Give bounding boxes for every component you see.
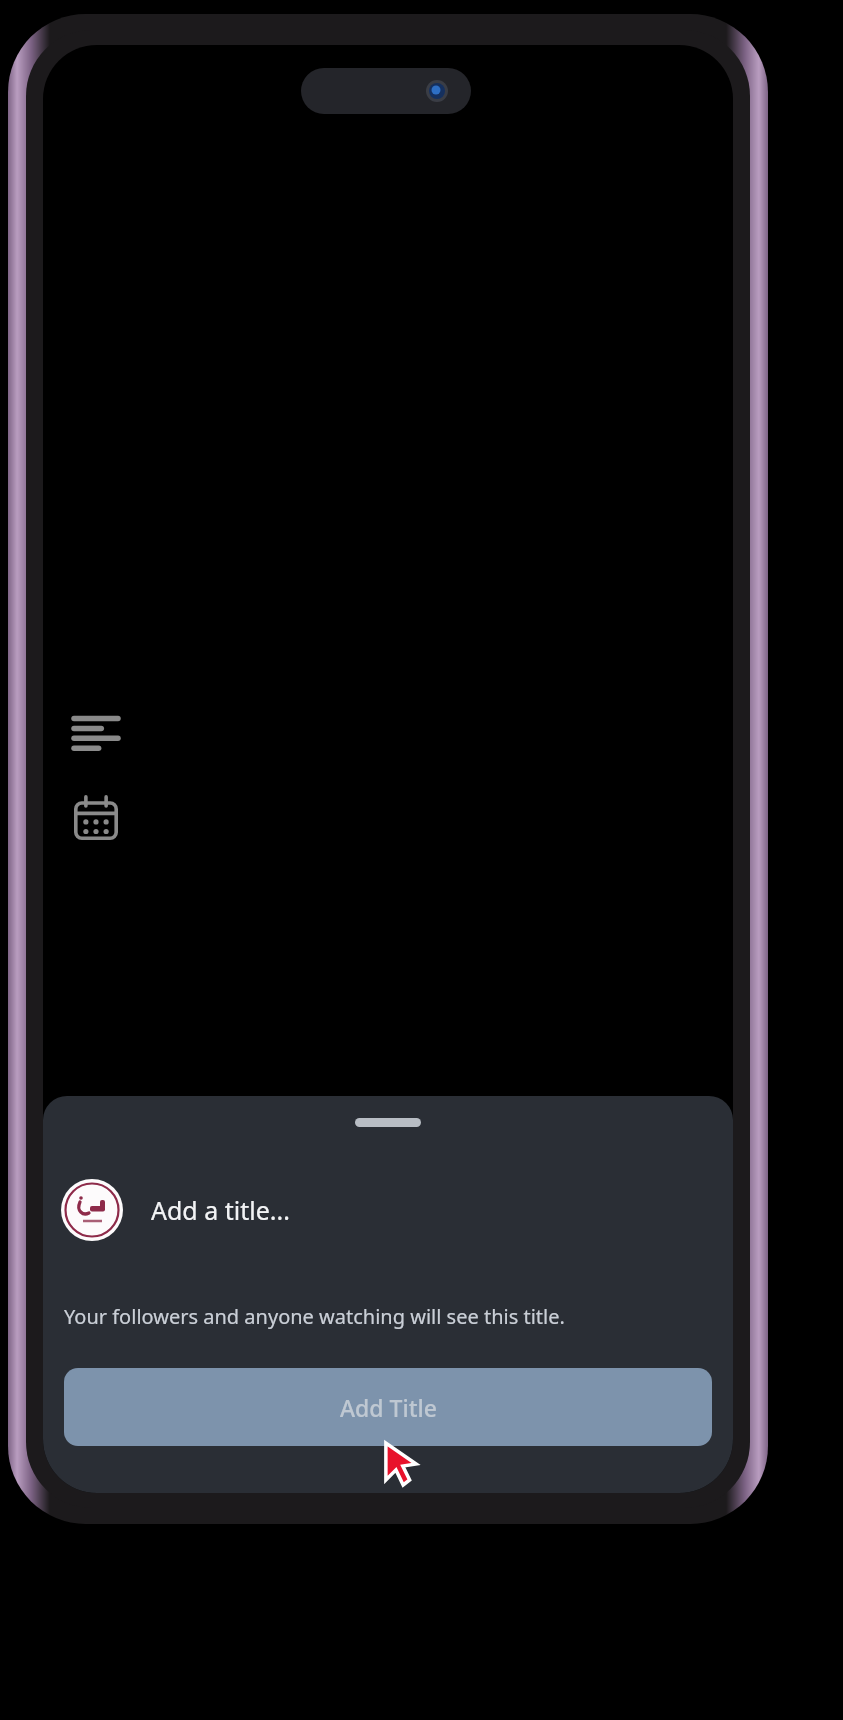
staticText: Add Title [340, 1392, 437, 1423]
staticText: Add a title... [151, 1193, 290, 1227]
other: Schedule [74, 796, 118, 840]
button[interactable]: Add Title [64, 1368, 712, 1446]
staticText: Your followers and anyone watching will … [64, 1303, 565, 1330]
button[interactable]: Add a title... [61, 1171, 733, 1249]
other: Captions [74, 714, 118, 752]
